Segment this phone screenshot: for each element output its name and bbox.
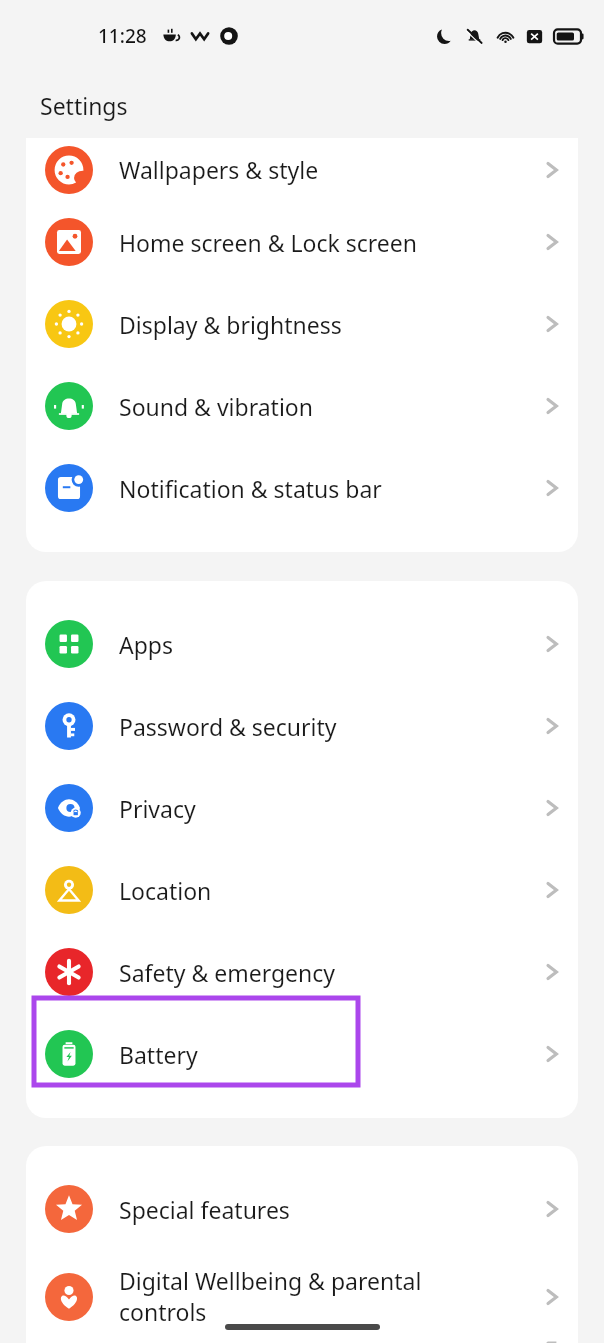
staticText: Notification & status bar bbox=[119, 473, 492, 504]
button[interactable]: Apps bbox=[26, 603, 578, 685]
button[interactable]: Special features bbox=[26, 1168, 578, 1250]
staticText: Battery bbox=[119, 1039, 492, 1070]
button[interactable]: Wallpapers & style bbox=[26, 138, 578, 201]
button[interactable]: Safety & emergency bbox=[26, 931, 578, 1013]
staticText: Special features bbox=[119, 1194, 492, 1225]
staticText: 11:28 bbox=[98, 23, 147, 49]
staticText: Location bbox=[119, 875, 492, 906]
button[interactable]: Display & brightness bbox=[26, 283, 578, 365]
button[interactable]: Battery bbox=[26, 1013, 578, 1095]
staticText: Password & security bbox=[119, 711, 492, 742]
staticText: Privacy bbox=[119, 793, 492, 824]
button[interactable]: Privacy bbox=[26, 767, 578, 849]
staticText: Home screen & Lock screen bbox=[119, 227, 492, 258]
staticText: Settings bbox=[40, 90, 128, 121]
button[interactable]: Digital Wellbeing & parental controls bbox=[26, 1250, 578, 1343]
button[interactable]: Sound & vibration bbox=[26, 365, 578, 447]
staticText: Display & brightness bbox=[119, 309, 492, 340]
staticText: Safety & emergency bbox=[119, 957, 492, 988]
staticText: Apps bbox=[119, 629, 492, 660]
staticText: Sound & vibration bbox=[119, 391, 492, 422]
button[interactable]: Home screen & Lock screen bbox=[26, 201, 578, 283]
button[interactable]: Password & security bbox=[26, 685, 578, 767]
staticText: Wallpapers & style bbox=[119, 154, 492, 185]
staticText: Digital Wellbeing & parental controls bbox=[119, 1265, 492, 1328]
button[interactable]: Notification & status bar bbox=[26, 447, 578, 529]
button[interactable]: Location bbox=[26, 849, 578, 931]
